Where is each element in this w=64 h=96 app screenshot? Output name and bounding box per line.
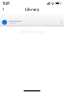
button[interactable]: [0, 12, 64, 26]
staticText: Library: [25, 6, 39, 12]
staticText: Nothing here yet: [19, 30, 44, 34]
button[interactable]: Back: [1, 7, 6, 12]
staticText: 9:41: [3, 1, 10, 6]
